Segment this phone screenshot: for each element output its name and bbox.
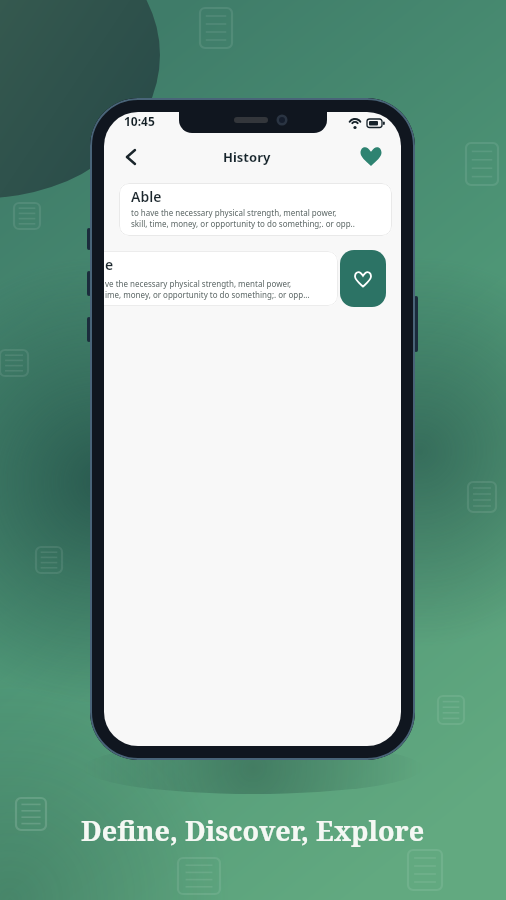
staticText: 10:45 bbox=[124, 113, 155, 129]
button[interactable]: e bbox=[104, 251, 338, 306]
staticText: e bbox=[105, 255, 114, 274]
staticText: ve the necessary physical strength, ment… bbox=[105, 278, 292, 289]
button[interactable] bbox=[355, 140, 387, 172]
staticText: History bbox=[223, 148, 271, 166]
staticText: Define, Discover, Explore bbox=[81, 812, 425, 849]
button[interactable] bbox=[340, 250, 386, 307]
staticText: to have the necessary physical strength,… bbox=[131, 207, 337, 218]
button[interactable] bbox=[116, 142, 146, 172]
staticText: ime, money, or opportunity to do somethi… bbox=[105, 289, 310, 300]
button[interactable]: Able bbox=[119, 183, 392, 236]
staticText: skill, time, money, or opportunity to do… bbox=[131, 218, 355, 229]
staticText: Able bbox=[131, 187, 162, 206]
